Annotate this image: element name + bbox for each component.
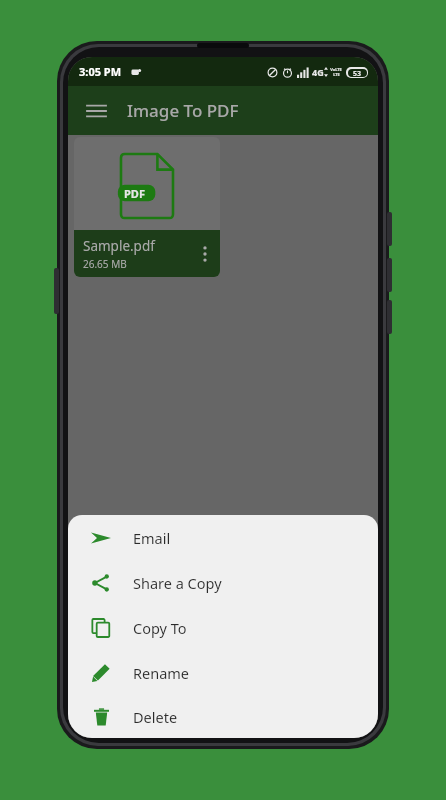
staticText: Rename (133, 663, 190, 683)
button[interactable]: Copy To (68, 605, 378, 650)
button[interactable]: Email (68, 515, 378, 560)
staticText: 26.65 MB (83, 257, 127, 271)
staticText: 53 (353, 69, 362, 77)
staticText: 3:05 PM (79, 64, 122, 79)
button[interactable]: Open navigation menu (76, 91, 116, 131)
staticText: Sample.pdf (83, 237, 155, 255)
staticText: Email (133, 528, 171, 548)
staticText: 4G (312, 66, 324, 78)
staticText: Copy To (133, 618, 187, 638)
button[interactable]: Share a Copy (68, 560, 378, 605)
button[interactable]: Delete (68, 695, 378, 738)
button[interactable]: Rename (68, 650, 378, 695)
staticText: Image To PDF (127, 99, 239, 122)
staticText: Share a Copy (133, 573, 222, 593)
staticText: Delete (133, 707, 178, 727)
staticText: VoLTE (330, 67, 342, 72)
staticText: LTE (333, 72, 340, 77)
button[interactable]: PDF (74, 137, 220, 277)
button[interactable]: More options (194, 237, 216, 271)
staticText: PDF (124, 186, 145, 201)
